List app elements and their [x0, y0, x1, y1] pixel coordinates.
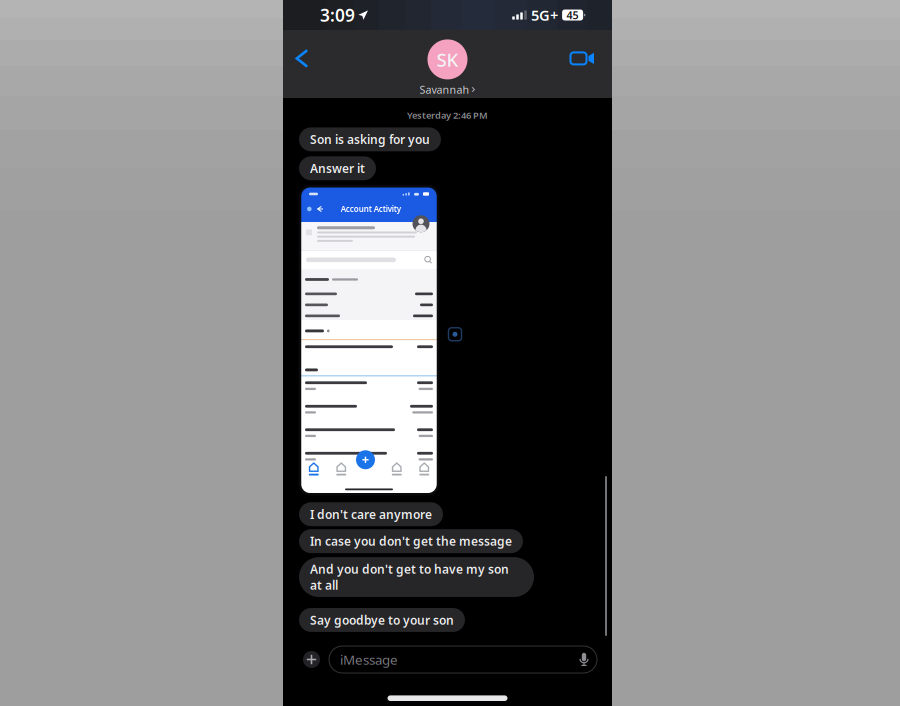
staticText: Say goodbye to your son	[310, 612, 454, 628]
button[interactable]: Say goodbye to your son	[283, 608, 612, 632]
button[interactable]: Answer it	[283, 156, 612, 180]
staticText: iMessage	[340, 651, 398, 668]
button[interactable]: In case you don't get the message	[283, 529, 612, 553]
staticText: Son is asking for you	[310, 131, 430, 147]
staticText: I don't care anymore	[310, 506, 432, 522]
staticText: 45	[567, 8, 579, 22]
button[interactable]: Back	[284, 36, 320, 80]
staticText: And you don't get to have my son at all	[310, 561, 509, 593]
button[interactable]: Add attachment	[299, 646, 324, 672]
staticText: Answer it	[310, 160, 365, 176]
button[interactable]: FaceTime	[561, 36, 603, 80]
staticText: 5G+	[531, 5, 558, 25]
button[interactable]: I don't care anymore	[283, 502, 612, 526]
button[interactable]: SK	[420, 31, 475, 97]
button[interactable]: And you don't get to have my son at all	[283, 557, 612, 597]
staticText: In case you don't get the message	[310, 533, 512, 549]
button[interactable]: Son is asking for you	[283, 127, 612, 151]
staticText: Yesterday 2:46 PM	[407, 109, 488, 121]
staticText: 3:09	[320, 3, 355, 26]
staticText: Account Activity	[341, 204, 401, 214]
staticText: SK	[436, 47, 458, 72]
staticText: Savannah	[420, 82, 470, 97]
button[interactable]: iMessage	[329, 646, 597, 673]
